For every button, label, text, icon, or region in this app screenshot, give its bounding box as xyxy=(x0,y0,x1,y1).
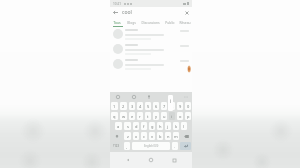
button[interactable]: Réseau xyxy=(177,18,192,26)
button[interactable]: s xyxy=(124,122,131,130)
button[interactable]: 9 xyxy=(177,102,183,110)
button[interactable]: l xyxy=(181,122,187,130)
staticText: 0 xyxy=(187,104,190,109)
button[interactable]: Recent apps xyxy=(169,155,179,165)
staticText: , xyxy=(126,144,128,149)
button[interactable]: , xyxy=(124,142,130,150)
button[interactable]: m xyxy=(173,132,179,140)
staticText: o xyxy=(179,114,182,119)
button[interactable]: 3 xyxy=(129,102,135,110)
button[interactable]: t xyxy=(145,112,151,120)
button[interactable]: More options xyxy=(184,95,188,99)
staticText: a xyxy=(117,124,120,129)
staticText: q xyxy=(113,114,116,119)
staticText: 10:21 xyxy=(113,2,122,6)
staticText: z xyxy=(127,134,129,139)
staticText: 5 xyxy=(147,104,150,109)
button[interactable]: English (US) xyxy=(132,142,170,150)
button[interactable]: z xyxy=(124,132,131,140)
staticText: p xyxy=(187,114,190,119)
staticText: f xyxy=(143,124,145,129)
button[interactable]: b xyxy=(157,132,163,140)
button[interactable] xyxy=(110,42,192,57)
button[interactable]: g xyxy=(149,122,155,130)
staticText: v xyxy=(151,134,154,139)
staticText: n xyxy=(167,134,170,139)
staticText: i xyxy=(171,114,173,119)
staticText: s xyxy=(127,124,129,129)
staticText: j xyxy=(167,124,169,129)
staticText: 2 xyxy=(122,104,125,109)
button[interactable]: 8 xyxy=(169,102,175,110)
button[interactable]: w xyxy=(120,112,127,120)
button[interactable]: Backspace xyxy=(181,132,191,140)
staticText: e xyxy=(131,114,134,119)
button[interactable]: 2 xyxy=(120,102,127,110)
button[interactable]: i xyxy=(169,112,175,120)
button[interactable]: Voice input xyxy=(147,95,151,99)
staticText: Réseau xyxy=(179,20,191,24)
button[interactable] xyxy=(110,57,192,72)
button[interactable]: Emoji xyxy=(132,95,136,99)
button[interactable]: c xyxy=(141,132,147,140)
button[interactable]: Blogs xyxy=(124,18,139,26)
button[interactable]: Symbols xyxy=(111,142,122,150)
button[interactable]: k xyxy=(173,122,179,130)
staticText: 6 xyxy=(155,104,158,109)
staticText: t xyxy=(147,114,149,119)
staticText: Public xyxy=(165,20,175,24)
staticText: Discussions xyxy=(141,20,160,24)
button[interactable]: Back xyxy=(113,7,189,18)
button[interactable]: Public xyxy=(162,18,177,26)
staticText: 9 xyxy=(179,104,182,109)
button[interactable]: Discussions xyxy=(139,18,162,26)
button[interactable]: Enter xyxy=(180,142,191,150)
staticText: ?123 xyxy=(113,144,120,148)
button[interactable]: 6 xyxy=(153,102,159,110)
button[interactable]: x xyxy=(133,132,139,140)
staticText: c xyxy=(143,134,145,139)
button[interactable]: 4 xyxy=(137,102,143,110)
other: Back xyxy=(113,10,118,15)
button[interactable]: . xyxy=(172,142,178,150)
button[interactable]: r xyxy=(137,112,143,120)
button[interactable]: f xyxy=(141,122,147,130)
button[interactable]: j xyxy=(165,122,171,130)
staticText: . xyxy=(174,144,176,149)
button[interactable] xyxy=(110,27,192,42)
button[interactable]: o xyxy=(177,112,183,120)
staticText: x xyxy=(135,134,138,139)
button[interactable]: Shift xyxy=(111,132,122,140)
button[interactable]: d xyxy=(133,122,139,130)
staticText: 7 xyxy=(163,104,166,109)
staticText: Tous xyxy=(113,20,121,24)
staticText: g xyxy=(151,124,154,129)
button[interactable]: Home xyxy=(146,155,156,165)
button[interactable]: p xyxy=(185,112,191,120)
staticText: y xyxy=(155,114,158,119)
button[interactable]: e xyxy=(129,112,135,120)
button[interactable]: h xyxy=(157,122,163,130)
button[interactable]: 0 xyxy=(185,102,191,110)
staticText: 1 xyxy=(113,104,116,109)
staticText: Blogs xyxy=(127,20,136,24)
button[interactable]: v xyxy=(149,132,155,140)
button[interactable]: n xyxy=(165,132,171,140)
button[interactable]: Keyboard settings xyxy=(116,95,120,99)
staticText: k xyxy=(175,124,178,129)
button[interactable]: q xyxy=(111,112,118,120)
staticText: i xyxy=(170,98,172,104)
staticText: English (US) xyxy=(144,144,159,148)
staticText: h xyxy=(159,124,162,129)
button[interactable]: 5 xyxy=(145,102,151,110)
button[interactable]: y xyxy=(153,112,159,120)
staticText: d xyxy=(135,124,138,129)
button[interactable]: Tous xyxy=(110,18,124,26)
button[interactable]: Back xyxy=(123,155,133,165)
button[interactable]: 1 xyxy=(111,102,118,110)
button[interactable]: a xyxy=(115,122,122,130)
button[interactable]: u xyxy=(161,112,167,120)
button[interactable]: 7 xyxy=(161,102,167,110)
staticText: b xyxy=(159,134,162,139)
